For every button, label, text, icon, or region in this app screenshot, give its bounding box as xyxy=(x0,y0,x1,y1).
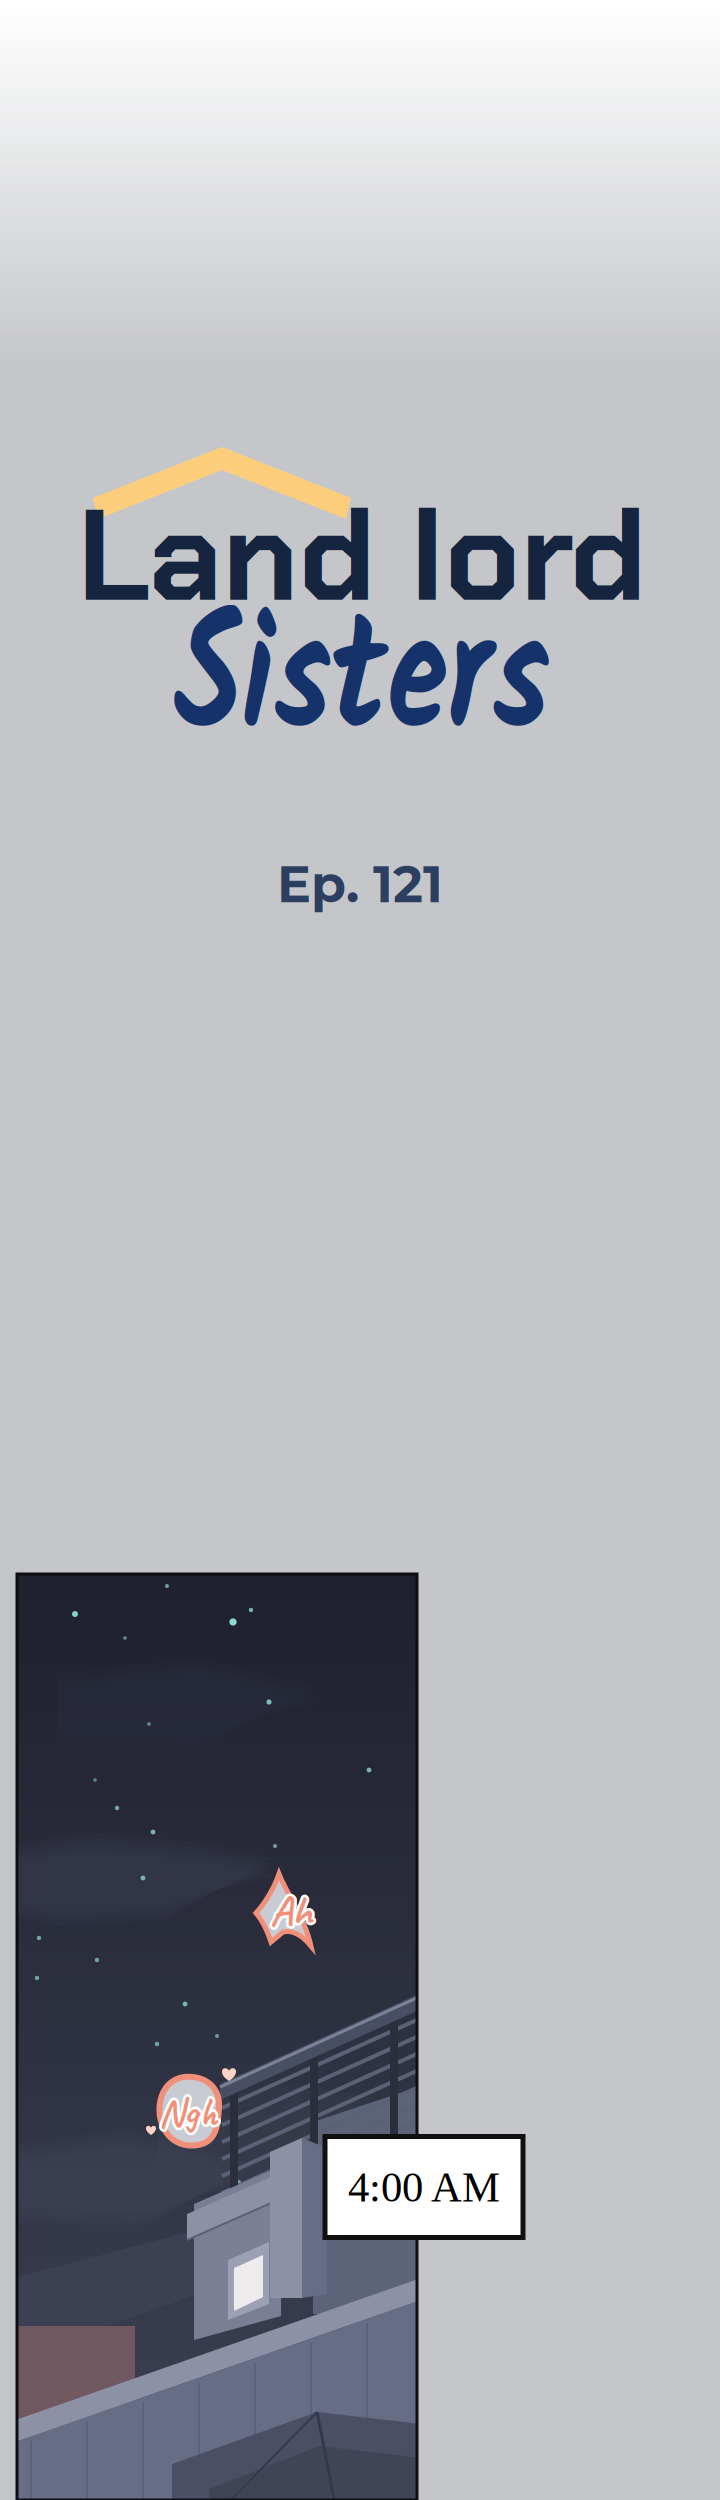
staticText: Ngh xyxy=(161,2088,220,2138)
staticText: Ah xyxy=(267,1884,309,1938)
staticText: Ah xyxy=(270,1884,312,1938)
staticText: Ngh xyxy=(156,2087,215,2137)
staticText: Ngh xyxy=(158,2084,217,2135)
staticText: Land lord xyxy=(77,473,646,639)
staticText: Ngh xyxy=(160,2089,219,2139)
staticText: Ah xyxy=(270,1887,312,1940)
staticText: Ngh xyxy=(160,2084,219,2135)
staticText: Ah xyxy=(272,1885,314,1939)
staticText: Ngh xyxy=(161,2087,220,2137)
staticText: Ah xyxy=(268,1883,310,1937)
staticText: Ngh xyxy=(157,2089,216,2139)
staticText: Ah xyxy=(269,1882,311,1936)
staticText: Ah xyxy=(271,1886,313,1940)
staticText: Ah xyxy=(269,1886,311,1940)
staticText: Ah xyxy=(272,1883,314,1937)
staticText: Ah xyxy=(271,1882,313,1936)
staticText: Ep. 121 xyxy=(277,853,443,915)
staticText: Ngh xyxy=(156,2088,215,2138)
staticText: Ah xyxy=(270,1881,312,1935)
staticText: Ngh xyxy=(158,2089,217,2140)
staticText: Ngh xyxy=(158,2087,217,2137)
staticText: Ngh xyxy=(157,2084,216,2135)
staticText: Ah xyxy=(268,1885,310,1939)
staticText: Ngh xyxy=(161,2085,220,2136)
staticText: 4:00 AM xyxy=(348,2163,500,2211)
staticText: Sisters xyxy=(143,569,580,799)
staticText: Ngh xyxy=(156,2085,215,2136)
staticText: Ah xyxy=(273,1884,315,1938)
